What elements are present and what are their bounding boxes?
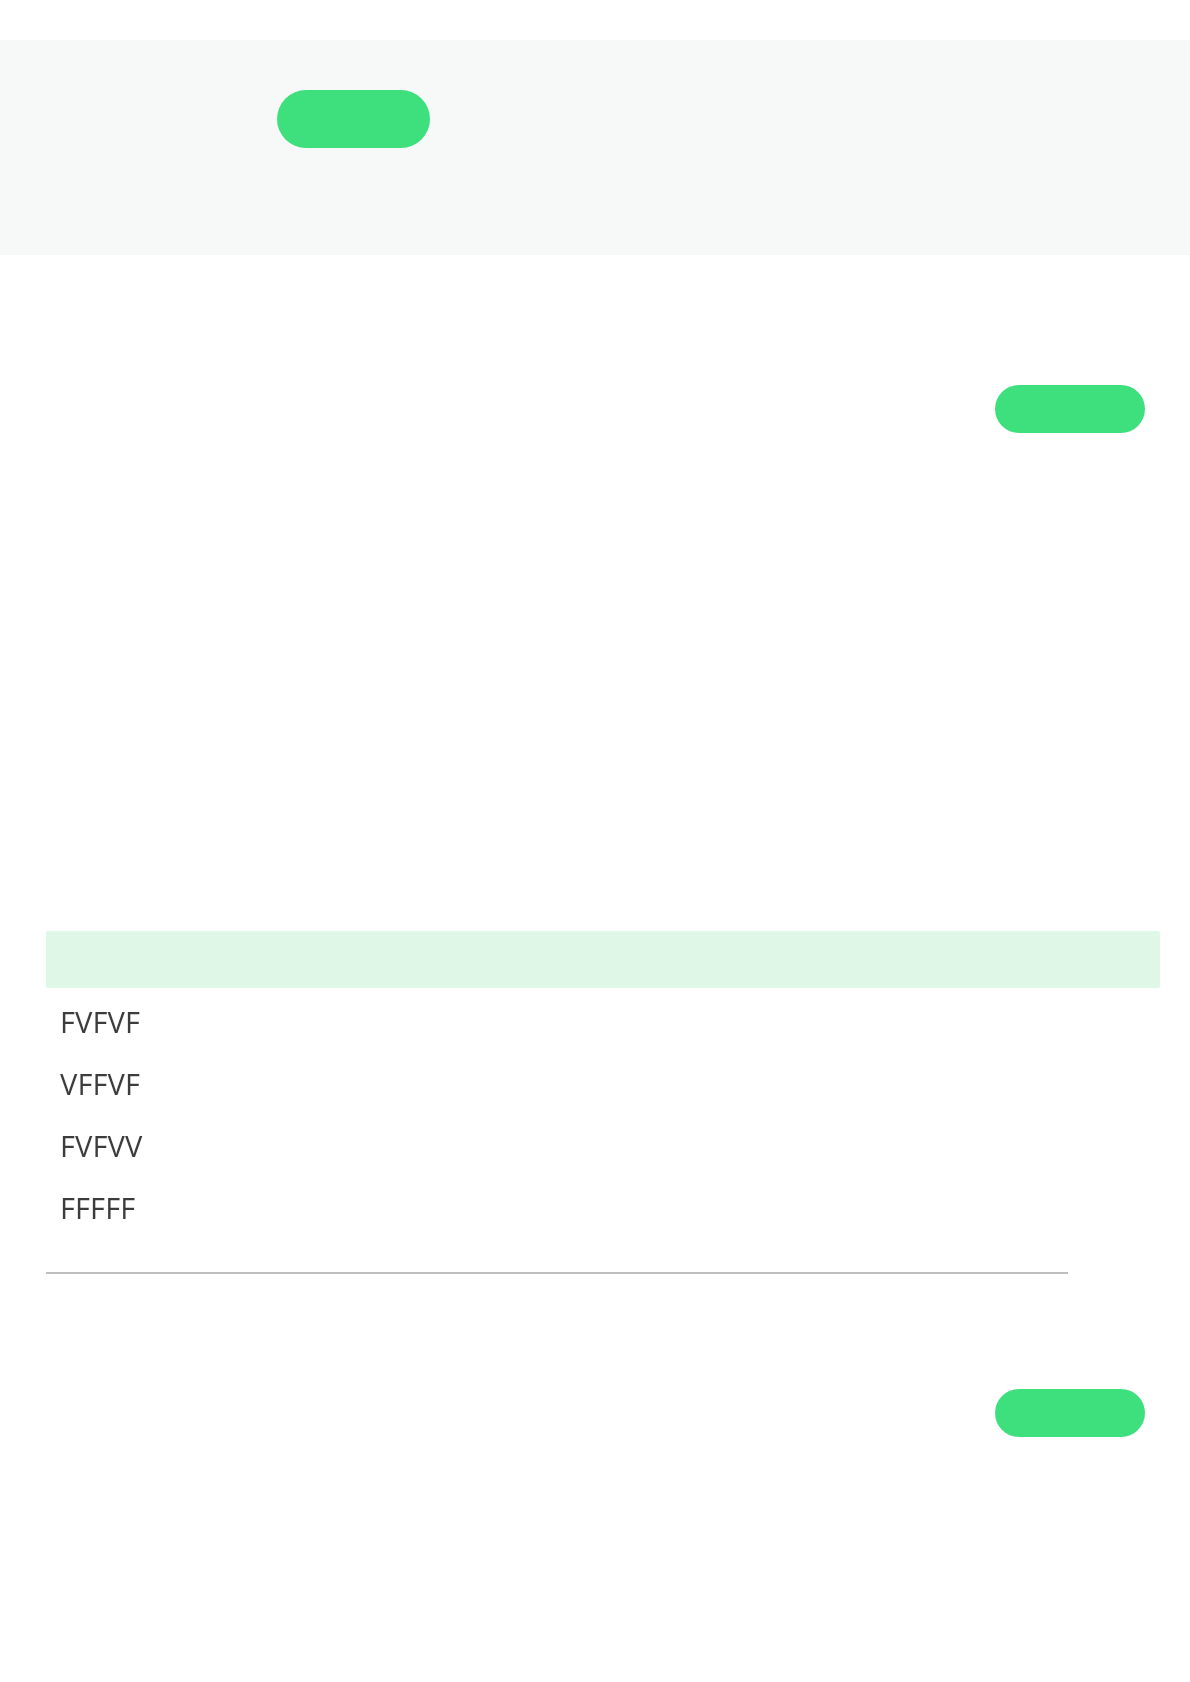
button[interactable]: Add	[995, 385, 1145, 433]
staticText: VFFVF	[60, 1064, 140, 1103]
button[interactable]: FVFVF	[46, 990, 1160, 1052]
button[interactable]: Primary action	[277, 90, 430, 148]
staticText: FVFVV	[60, 1126, 143, 1165]
button[interactable]: FFFFF	[46, 1176, 1160, 1238]
button[interactable]: Confirm	[995, 1389, 1145, 1437]
button[interactable]: VFFVF	[46, 1052, 1160, 1114]
button[interactable]: FVFVV	[46, 1114, 1160, 1176]
staticText: FFFFF	[60, 1188, 136, 1227]
staticText: FVFVF	[60, 1002, 140, 1041]
